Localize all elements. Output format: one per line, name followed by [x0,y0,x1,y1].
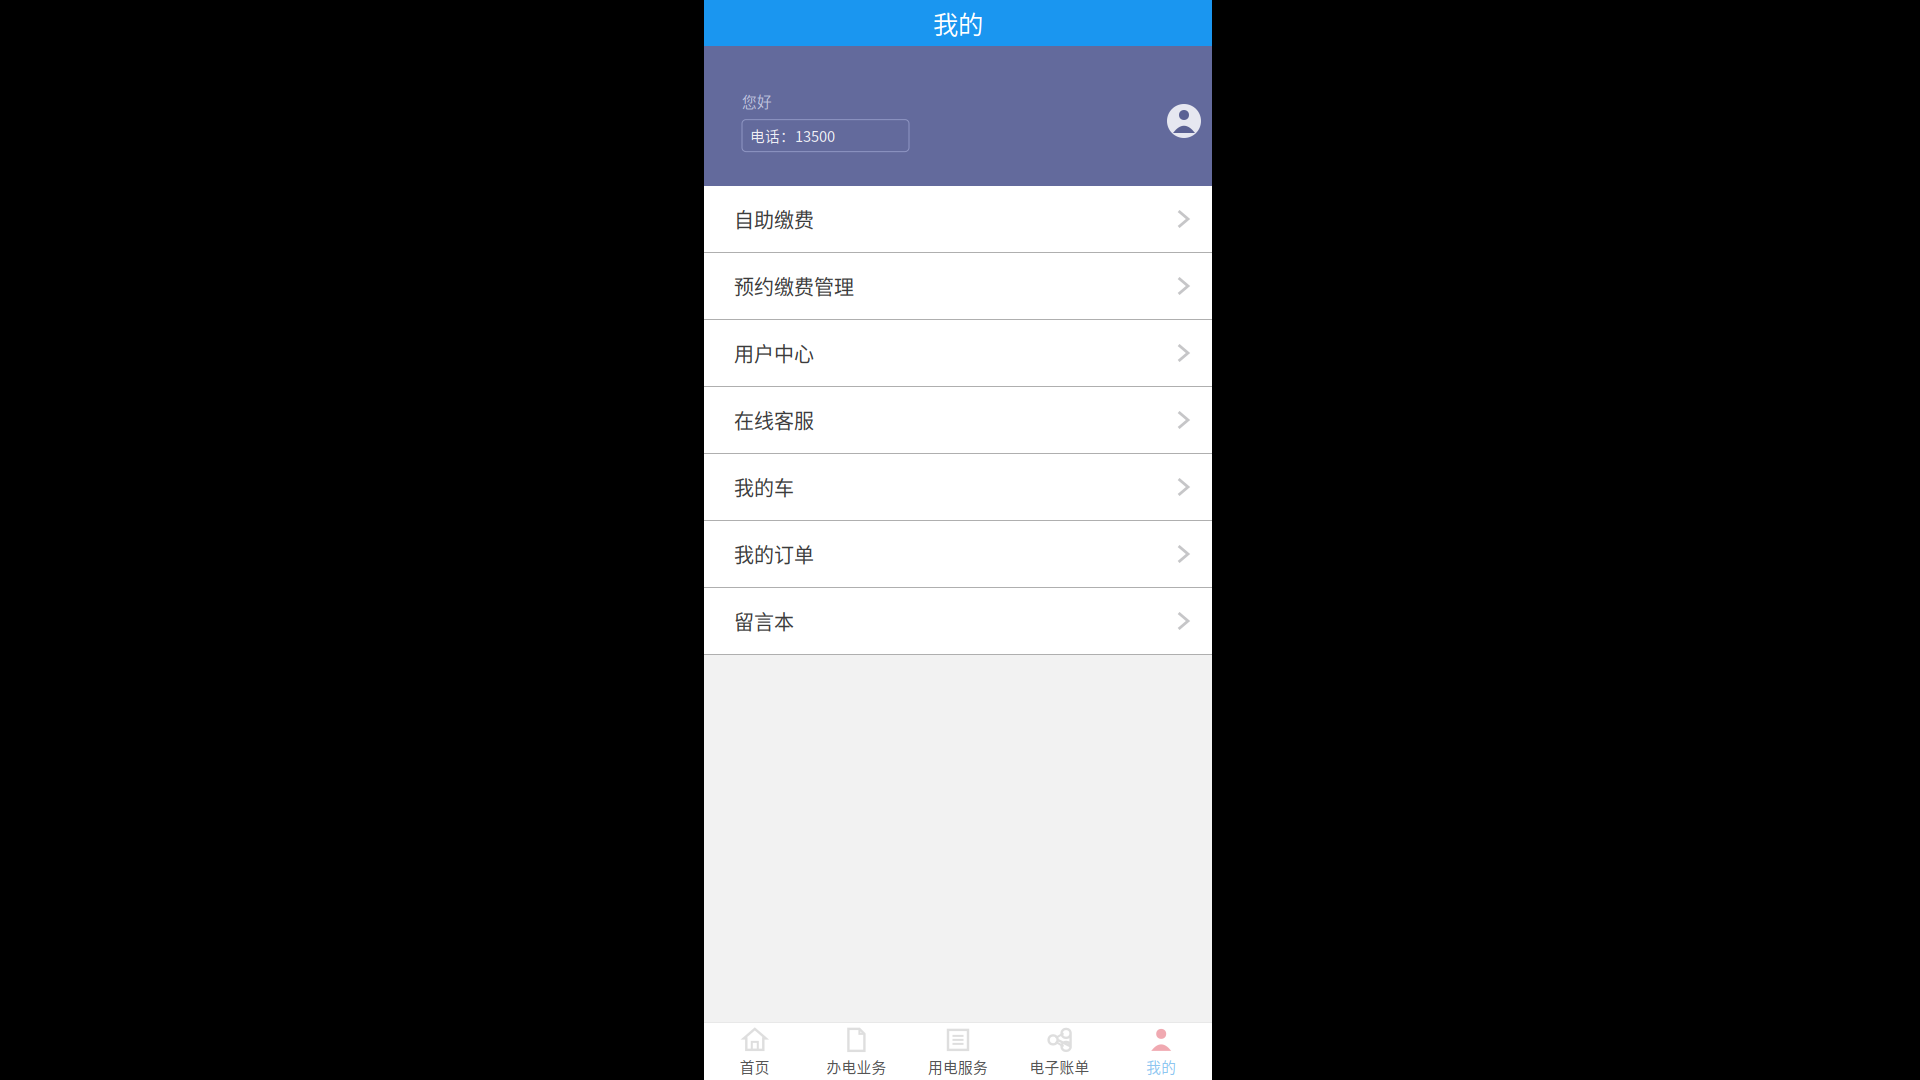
staticText: 首页 [740,1056,770,1077]
staticText: 我的 [933,5,983,41]
button[interactable]: 我的 [1110,1023,1212,1080]
button[interactable]: 我的车 [704,454,1212,521]
staticText: 用户中心 [734,338,814,367]
button[interactable]: 自助缴费 [704,186,1212,253]
button[interactable]: 首页 [704,1023,806,1080]
staticText: 我的车 [734,472,794,501]
staticText: 预约缴费管理 [734,271,854,300]
button[interactable]: 用电服务 [907,1023,1009,1080]
staticText: 自助缴费 [734,204,814,233]
staticText: 办电业务 [826,1056,886,1077]
staticText: 电子账单 [1030,1056,1090,1077]
staticText: 用电服务 [928,1056,988,1077]
staticText: 我的 [1146,1056,1176,1077]
button[interactable]: 留言本 [704,588,1212,655]
button[interactable]: 个人头像 Profile photo [1167,104,1201,138]
button[interactable]: 在线客服 [704,387,1212,454]
button[interactable]: 办电业务 [806,1023,907,1080]
staticText: 我的订单 [734,539,814,568]
button[interactable]: 用户中心 [704,320,1212,387]
button[interactable]: 预约缴费管理 [704,253,1212,320]
button[interactable]: 我的订单 [704,521,1212,588]
staticText: 您好 [742,90,772,112]
button[interactable]: 电子账单 [1009,1023,1110,1080]
staticText: 电话：13500 [750,125,835,146]
staticText: 留言本 [734,606,794,635]
staticText: 在线客服 [734,405,814,434]
